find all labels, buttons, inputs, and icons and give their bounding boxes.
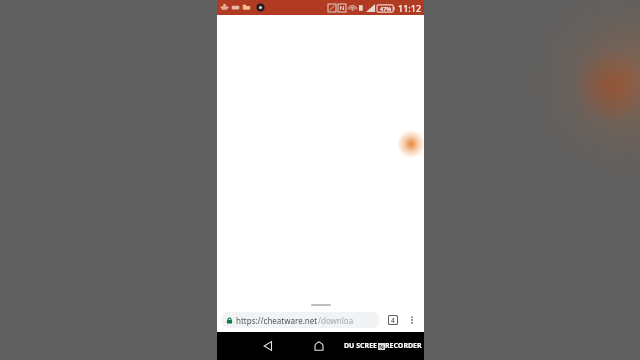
button[interactable]: Back <box>255 333 281 359</box>
button[interactable]: More options <box>404 312 420 328</box>
staticText: DU SCREE <box>344 341 378 351</box>
staticText: 47% <box>380 5 392 12</box>
button[interactable]: Home <box>306 333 332 359</box>
staticText: 11:12 <box>398 2 422 14</box>
staticText: 4 <box>391 316 395 324</box>
staticText: https://cheatware.net <box>236 315 318 326</box>
button[interactable]: Tabs <box>385 312 401 328</box>
button[interactable]: https://cheatware.net <box>221 312 380 328</box>
staticText: RECORDER <box>385 341 422 351</box>
staticText: /downloa <box>318 315 354 326</box>
staticText: N <box>379 343 384 350</box>
